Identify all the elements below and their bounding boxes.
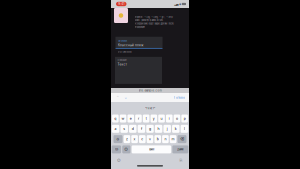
staticText: ⌫ <box>180 137 184 141</box>
staticText: 123 <box>115 148 118 151</box>
button[interactable]: t <box>143 114 149 122</box>
staticText: v <box>149 137 151 141</box>
button[interactable]: ☺ <box>122 145 130 153</box>
button[interactable]: Описание <box>115 57 162 84</box>
staticText: f <box>141 127 142 131</box>
staticText: site.example.com <box>138 89 161 92</box>
staticText: ☺ <box>124 147 128 151</box>
staticText: d <box>132 127 134 131</box>
button[interactable]: h <box>155 125 162 133</box>
button[interactable]: k <box>172 125 180 133</box>
staticText: n <box>164 137 166 141</box>
button[interactable]: j <box>163 125 171 133</box>
button[interactable]: u <box>158 114 165 122</box>
staticText: i <box>169 116 170 121</box>
button[interactable]: w <box>120 114 126 122</box>
staticText: s <box>123 127 125 131</box>
staticText: “Текст” <box>145 107 155 110</box>
button[interactable]: Dictation <box>178 157 184 164</box>
staticText: o <box>176 116 178 121</box>
staticText: Изображение будет видно другим после <box>134 22 173 25</box>
staticText: w <box>121 116 124 121</box>
button[interactable]: Далее <box>172 145 188 153</box>
staticText: ◈ <box>179 2 181 6</box>
button[interactable]: ⌫ <box>177 135 186 143</box>
staticText: p <box>184 116 186 121</box>
staticText: ☺ <box>117 158 121 162</box>
staticText: ⇧ <box>116 137 120 141</box>
staticText: j <box>167 127 168 131</box>
button[interactable]: q <box>112 114 119 122</box>
staticText: r <box>138 116 139 121</box>
staticText: y <box>153 116 155 121</box>
button[interactable]: Next field <box>123 93 129 102</box>
staticText: t <box>146 116 147 121</box>
staticText: Заголовок <box>118 40 127 42</box>
button[interactable]: e <box>127 114 134 122</box>
button[interactable]: x <box>131 135 138 143</box>
button[interactable]: c <box>139 135 146 143</box>
staticText: Классный пляж <box>118 43 143 47</box>
button[interactable]: y <box>151 114 157 122</box>
staticText: модерации <box>134 25 144 28</box>
staticText: ⌃ <box>116 96 119 99</box>
staticText: Далее <box>177 148 183 151</box>
button[interactable]: p <box>181 114 188 122</box>
staticText: l <box>184 127 185 131</box>
button[interactable]: r <box>135 114 142 122</box>
button[interactable]: b <box>154 135 161 143</box>
staticText: u <box>161 116 163 121</box>
staticText: space <box>149 148 154 151</box>
staticText: k <box>175 127 177 131</box>
button[interactable]: a <box>112 125 119 133</box>
button[interactable]: Emoji <box>116 157 122 164</box>
staticText: Описание <box>117 59 126 61</box>
staticText: b <box>157 137 159 141</box>
staticText: h <box>158 127 160 131</box>
staticText: x <box>134 137 136 141</box>
button[interactable]: “Текст” <box>145 107 155 110</box>
button[interactable]: Заголовок <box>115 37 162 49</box>
button[interactable]: g <box>146 125 154 133</box>
staticText: 9:41 <box>118 2 124 6</box>
staticText: c <box>141 137 143 141</box>
button[interactable]: l <box>181 125 188 133</box>
staticText: Макс. размер файла 20 МБ <box>134 19 162 21</box>
button[interactable]: ⇧ <box>113 135 122 143</box>
button[interactable]: z <box>124 135 130 143</box>
staticText: q <box>114 116 116 121</box>
button[interactable]: n <box>162 135 169 143</box>
button[interactable]: space <box>132 145 171 153</box>
button[interactable]: Готово <box>174 93 185 102</box>
staticText: Текст <box>117 62 126 66</box>
button[interactable]: d <box>129 125 136 133</box>
staticText: a <box>115 127 117 131</box>
staticText: 0/50 символов <box>117 51 131 53</box>
button[interactable]: Previous field <box>115 93 121 102</box>
staticText: e <box>130 116 132 121</box>
button[interactable]: f <box>138 125 145 133</box>
button[interactable]: m <box>170 135 176 143</box>
button[interactable]: 123 <box>112 145 121 153</box>
staticText: g <box>149 127 151 131</box>
staticText: m <box>172 137 175 141</box>
staticText: ▂▄ <box>174 2 178 6</box>
staticText: z <box>126 137 128 141</box>
button[interactable]: v <box>147 135 153 143</box>
staticText: ⎘ <box>179 159 182 162</box>
button[interactable]: o <box>174 114 180 122</box>
button[interactable]: s <box>120 125 128 133</box>
staticText: ⌄ <box>124 96 127 99</box>
staticText: Формат: *.jpg, *.jpeg, *.gif, *.bmp <box>134 15 172 18</box>
staticText: Готово <box>174 96 185 99</box>
button[interactable]: i <box>166 114 172 122</box>
